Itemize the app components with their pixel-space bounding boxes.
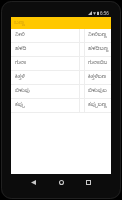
- staticText: ಕಪ್ಪುಬಣ್ಣ: [88, 102, 107, 109]
- staticText: ಹಳದಿಬಣ್ಣ: [88, 46, 109, 53]
- button[interactable]: ಹಳದಿ: [11, 43, 111, 56]
- button[interactable]: ಕಿತ್ತಳೆ: [11, 71, 111, 84]
- staticText: ಬಣ್ಣ: [14, 19, 25, 27]
- button[interactable]: Recent apps: [80, 174, 96, 190]
- button[interactable]: ನೀಲಿ: [11, 29, 111, 42]
- staticText: 6:56: [100, 10, 109, 15]
- button[interactable]: Back: [25, 174, 41, 190]
- staticText: ಬಿಳುಪು: [15, 88, 79, 95]
- staticText: ಕಿತ್ತಳೆಬಣ: [88, 74, 107, 81]
- staticText: ಗುಲಾಬಿಬಣ: [88, 60, 111, 67]
- staticText: ನೀಲಿ: [15, 32, 79, 39]
- staticText: ಕಿತ್ತಳೆ: [15, 74, 79, 81]
- staticText: ಗುಲಾ: [15, 60, 79, 67]
- staticText: ಬಿಳುಪುಬಣ: [88, 88, 111, 95]
- button[interactable]: ಬಿಳುಪು: [11, 85, 111, 98]
- staticText: ನೀಲಿಬಣ್ಣ: [88, 32, 107, 39]
- staticText: ಹಳದಿ: [15, 46, 79, 53]
- button[interactable]: Home: [53, 174, 69, 190]
- staticText: ಕಪ್ಪು: [15, 102, 79, 109]
- button[interactable]: ಕಪ್ಪು: [11, 99, 111, 112]
- button[interactable]: ಗುಲಾ: [11, 57, 111, 70]
